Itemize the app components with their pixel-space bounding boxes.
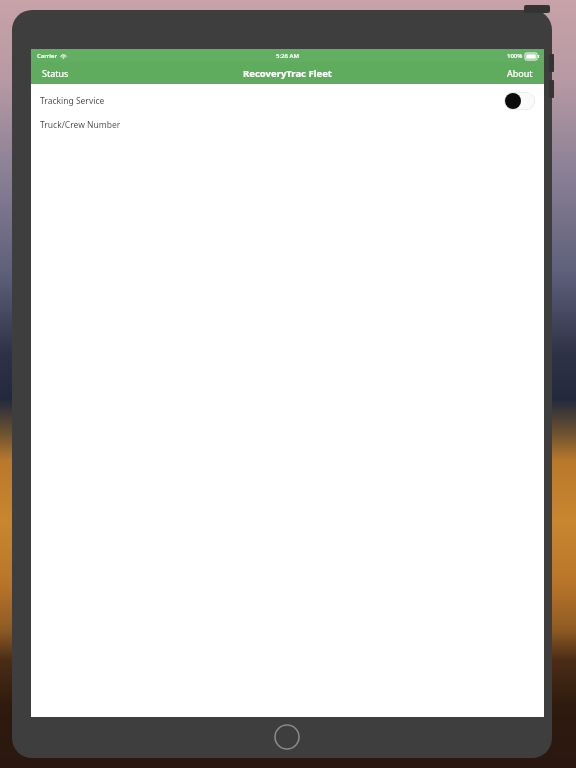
button[interactable]: Tracking Service [31, 89, 544, 113]
button[interactable]: Truck/Crew Number [31, 113, 544, 137]
staticText: About [507, 67, 533, 79]
staticText: Status [42, 67, 69, 79]
button[interactable]: About [496, 62, 544, 84]
staticText: 100% [507, 52, 523, 60]
staticText: 5:26 AM [276, 52, 299, 60]
button[interactable]: Home [274, 724, 300, 750]
staticText: RecoveryTrac Fleet [243, 67, 332, 80]
button[interactable]: Tracking Service toggle [504, 92, 535, 110]
staticText: Carrier [37, 52, 57, 60]
staticText: Tracking Service [40, 95, 105, 107]
staticText: Truck/Crew Number [40, 119, 121, 131]
button[interactable]: Status [31, 62, 80, 84]
